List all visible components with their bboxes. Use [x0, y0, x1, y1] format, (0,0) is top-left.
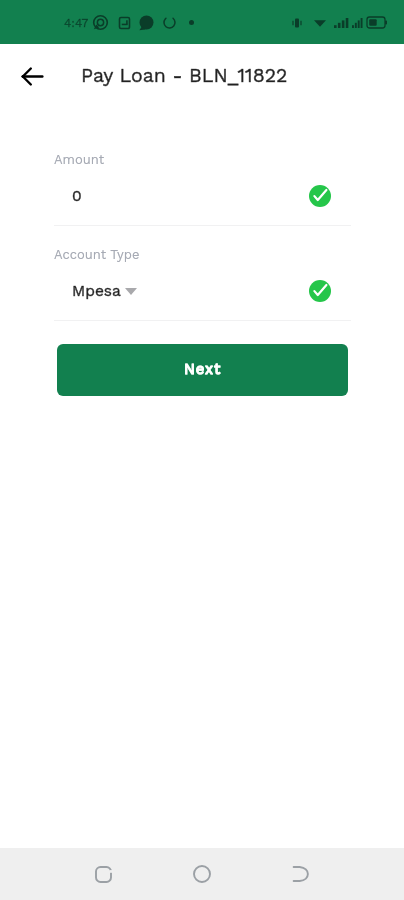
staticText: Amount	[54, 152, 105, 167]
button[interactable]: Next	[57, 344, 348, 396]
staticText: 4:47	[64, 16, 89, 30]
staticText: Mpesa	[72, 282, 121, 300]
staticText: 0	[72, 187, 82, 205]
staticText: 4:47	[64, 16, 89, 30]
staticText: Mpesa	[72, 282, 121, 300]
staticText: Pay Loan - BLN_11822	[81, 64, 288, 87]
staticText: Account Type	[54, 247, 140, 262]
button[interactable]: Home	[183, 855, 221, 893]
staticText: Next	[184, 360, 222, 378]
button[interactable]: Back	[282, 855, 320, 893]
staticText: 0	[72, 187, 82, 205]
button[interactable]: Back	[10, 54, 54, 98]
button[interactable]: Recent apps	[84, 855, 122, 893]
staticText: Pay Loan - BLN_11822	[81, 64, 288, 87]
staticText: Next	[184, 360, 222, 378]
